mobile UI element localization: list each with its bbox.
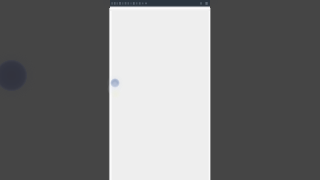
button[interactable]: Open (110, 0, 210, 180)
button[interactable]: Open (110, 74, 128, 94)
